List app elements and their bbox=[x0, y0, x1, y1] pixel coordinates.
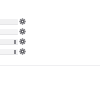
button[interactable]: List item bbox=[0, 29, 18, 35]
button[interactable]: List item bbox=[0, 39, 18, 45]
button[interactable]: Settings bbox=[19, 28, 26, 35]
button[interactable]: List item bbox=[0, 19, 18, 25]
button[interactable]: Settings bbox=[19, 18, 26, 25]
button[interactable]: Settings bbox=[19, 48, 26, 55]
button[interactable]: List item bbox=[0, 49, 18, 55]
button[interactable]: Settings bbox=[19, 38, 26, 45]
